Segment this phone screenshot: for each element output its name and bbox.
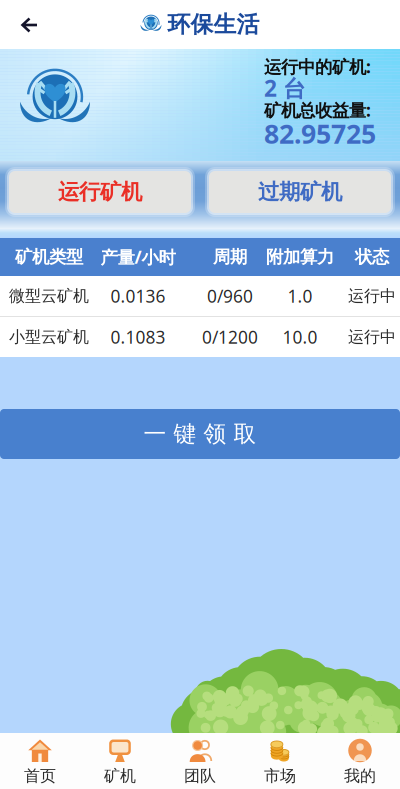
staticText: 环保生活 — [167, 11, 259, 38]
staticText: 0.1083 — [110, 325, 165, 348]
staticText: 运行中的矿机: — [264, 55, 371, 78]
staticText: 82.95725 — [264, 116, 376, 151]
staticText: 我的 — [344, 766, 376, 786]
staticText: 0/1200 — [202, 325, 258, 348]
staticText: 1.0 — [287, 284, 312, 307]
staticText: 矿机 — [104, 766, 136, 786]
staticText: 10.0 — [282, 325, 317, 348]
staticText: 微型云矿机 — [9, 286, 89, 306]
staticText: 0.0136 — [110, 284, 165, 307]
staticText: 状态 — [355, 246, 389, 268]
staticText: 团队 — [184, 766, 216, 786]
button[interactable]: 一 键 领 取 — [0, 409, 400, 459]
staticText: 矿机总收益量: — [264, 98, 371, 121]
staticText: 周期 — [213, 246, 247, 268]
button[interactable]: 我的 — [320, 733, 400, 789]
staticText: 2 台 — [264, 73, 306, 103]
staticText: 市场 — [264, 766, 296, 786]
button[interactable]: 矿机 — [80, 733, 160, 789]
staticText: 0/960 — [207, 284, 253, 307]
staticText: 附加算力 — [266, 246, 334, 268]
button[interactable]: 运行矿机 — [5, 167, 195, 217]
staticText: 产量/小时 — [100, 245, 175, 268]
staticText: 小型云矿机 — [9, 327, 89, 347]
staticText: 首页 — [24, 766, 56, 786]
staticText: 运行中 — [348, 327, 396, 347]
staticText: 矿机类型 — [15, 246, 83, 268]
staticText: 运行中 — [348, 286, 396, 306]
button[interactable]: 过期矿机 — [205, 167, 395, 217]
staticText: 过期矿机 — [258, 179, 342, 205]
button[interactable]: 团队 — [160, 733, 240, 789]
button[interactable]: Back — [0, 0, 48, 49]
staticText: 运行矿机 — [58, 179, 142, 205]
staticText: 一 键 领 取 — [143, 420, 256, 448]
button[interactable]: 首页 — [0, 733, 80, 789]
button[interactable]: 市场 — [240, 733, 320, 789]
